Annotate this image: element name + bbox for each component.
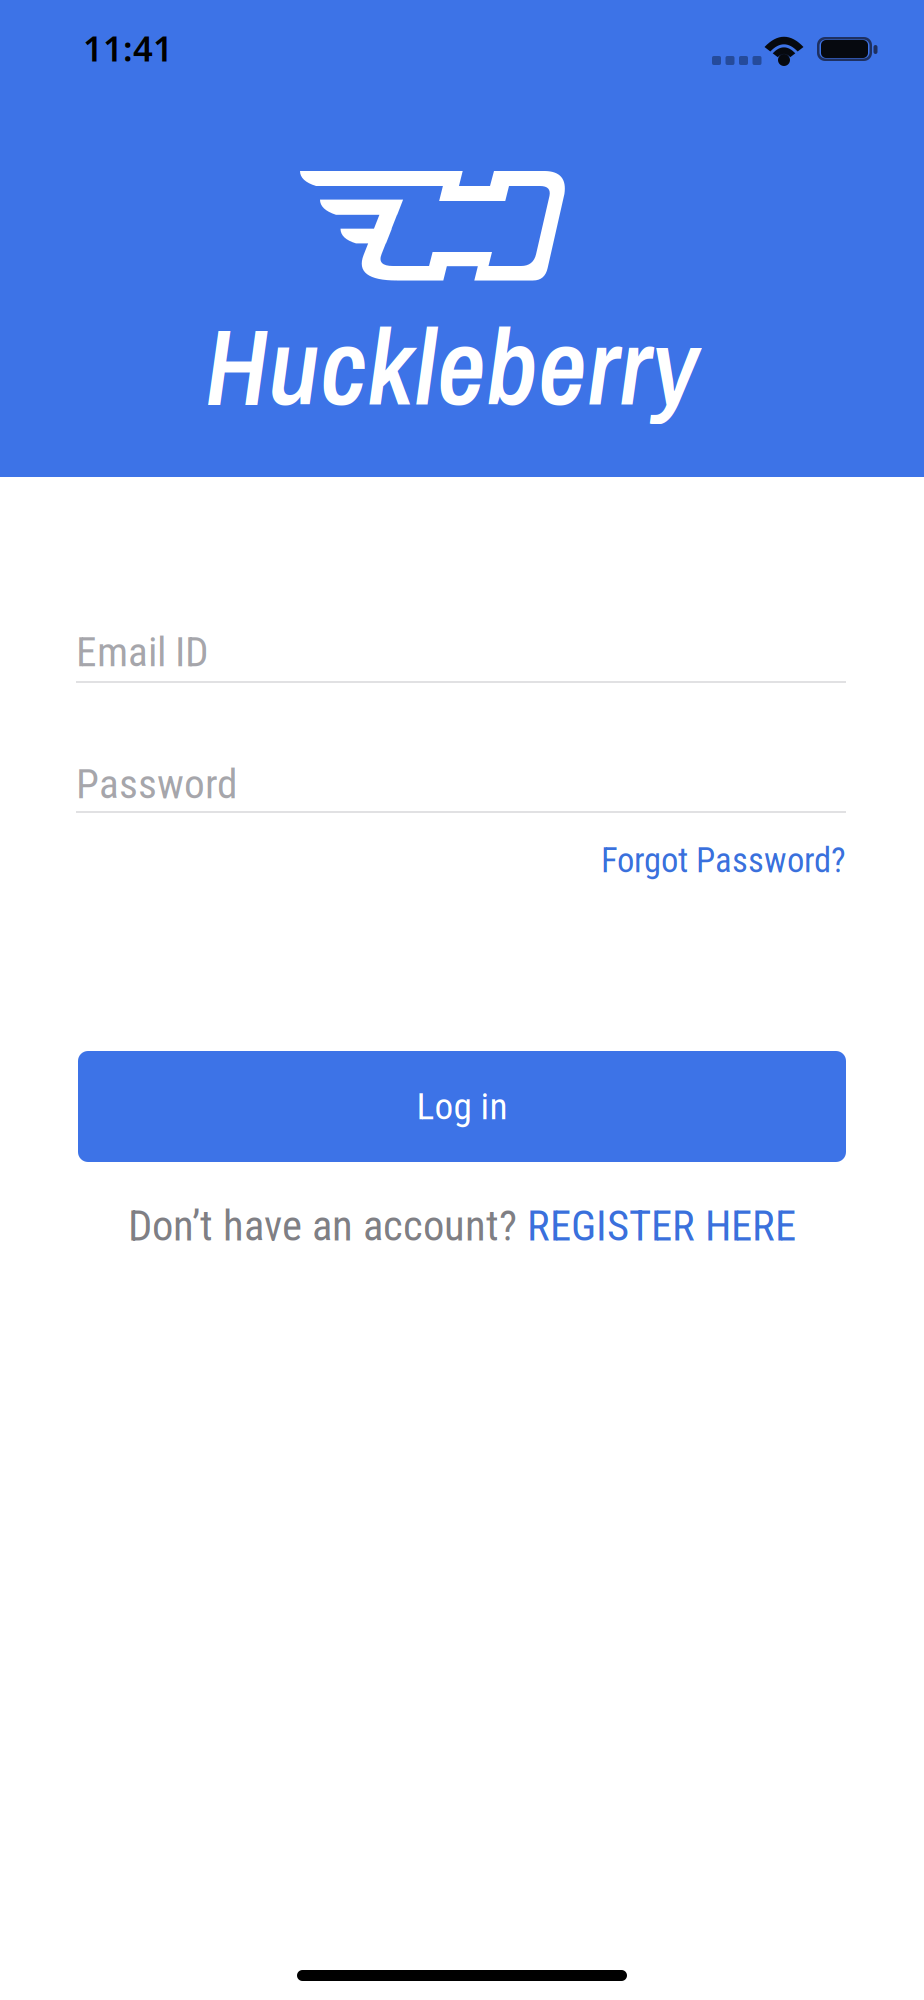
staticText: Huckleberry <box>205 294 698 438</box>
button[interactable]: REGISTER HERE <box>527 1201 796 1251</box>
staticText: Don’t have an account? <box>128 1201 527 1251</box>
staticText: REGISTER HERE <box>527 1201 796 1251</box>
staticText: 11:41 <box>83 25 173 71</box>
button[interactable]: Forgot Password? <box>601 840 846 881</box>
staticText: Email ID <box>76 628 209 676</box>
button[interactable]: Password <box>76 760 846 813</box>
staticText: Log in <box>416 1085 507 1128</box>
button[interactable]: Log in <box>78 1051 846 1162</box>
staticText: Password <box>76 760 238 808</box>
staticText: Forgot Password? <box>601 840 846 881</box>
button[interactable]: Email ID <box>76 628 846 683</box>
